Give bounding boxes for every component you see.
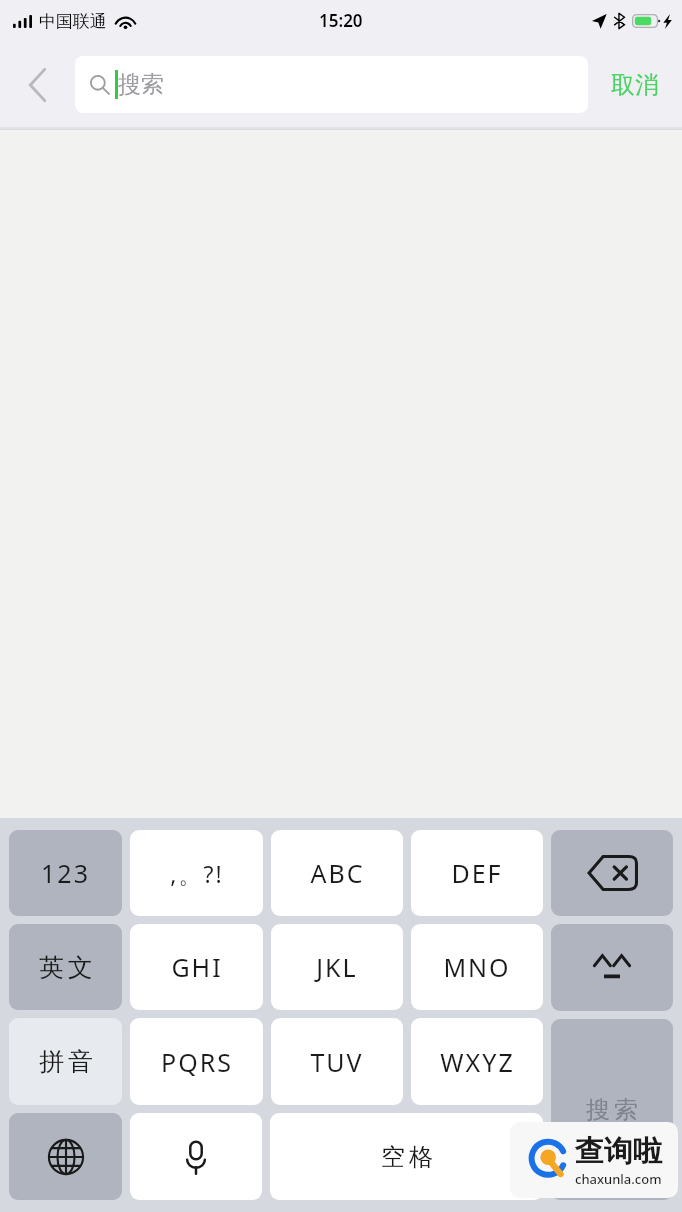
button[interactable]: GHI [130, 924, 263, 1010]
staticText: ,。?! [170, 858, 224, 889]
button[interactable]: 搜索 [551, 1019, 673, 1200]
button[interactable]: 拼音 [9, 1018, 122, 1105]
staticText: TUV [310, 1045, 364, 1079]
button[interactable]: ,。?! [130, 830, 263, 916]
button[interactable]: DEF [411, 830, 543, 916]
staticText: 123 [41, 856, 90, 890]
staticText: 查询啦 [575, 1133, 662, 1170]
staticText: PQRS [161, 1045, 233, 1079]
button[interactable]: ABC [271, 830, 403, 916]
button[interactable]: WXYZ [411, 1018, 543, 1105]
staticText: 15:20 [319, 9, 363, 32]
staticText: WXYZ [440, 1045, 515, 1079]
staticText: chaxunla.com [575, 1170, 662, 1188]
staticText: ABC [310, 856, 365, 890]
button[interactable]: Emoji [551, 924, 673, 1011]
button[interactable]: MNO [411, 924, 543, 1010]
button[interactable]: 空格 [270, 1113, 543, 1200]
staticText: 空格 [379, 1142, 435, 1172]
button[interactable]: Back [0, 42, 75, 127]
staticText: 英文 [37, 952, 95, 983]
staticText: JKL [316, 950, 358, 984]
staticText: MNO [443, 950, 511, 984]
staticText: GHI [171, 950, 223, 984]
button[interactable]: Delete [551, 830, 673, 916]
button[interactable]: 英文 [9, 924, 122, 1010]
staticText: 拼音 [37, 1046, 95, 1077]
staticText: 搜索 [584, 1095, 640, 1125]
button[interactable]: Voice input [130, 1113, 262, 1200]
button[interactable]: Switch keyboard [9, 1113, 122, 1200]
button[interactable]: 123 [9, 830, 122, 916]
staticText: 取消 [611, 70, 659, 100]
button[interactable]: TUV [271, 1018, 403, 1105]
button[interactable]: 搜索 [75, 56, 588, 113]
staticText: DEF [451, 856, 503, 890]
button[interactable]: 取消 [588, 42, 682, 127]
staticText: 中国联通 [39, 11, 107, 32]
button[interactable]: JKL [271, 924, 403, 1010]
staticText: 搜索 [118, 70, 164, 99]
button[interactable]: PQRS [130, 1018, 263, 1105]
